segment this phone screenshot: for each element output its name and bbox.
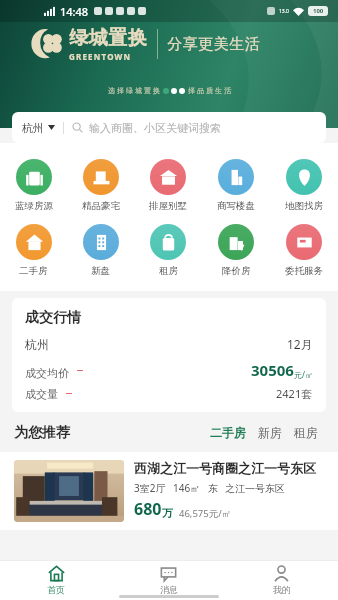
staticText: 46,575元/㎡ <box>179 507 232 520</box>
button[interactable]: 降价房 <box>202 221 270 280</box>
button[interactable]: 我的 <box>225 560 338 600</box>
button[interactable]: 二手房 <box>204 421 252 444</box>
button[interactable]: 杭州 <box>12 112 326 143</box>
staticText: 委托服务 <box>285 265 323 277</box>
staticText: 择品质生活 <box>187 86 232 95</box>
staticText: 万 <box>162 506 173 520</box>
staticText: 12月 <box>287 336 313 352</box>
button[interactable]: 商写楼盘 <box>202 156 270 215</box>
staticText: 成交行情 <box>25 309 81 327</box>
button[interactable]: 地图找房 <box>270 156 338 215</box>
staticText: 146㎡ <box>173 481 201 495</box>
button[interactable]: 蓝绿房源 <box>0 156 67 215</box>
button[interactable]: 消息 <box>112 560 225 600</box>
staticText: 降价房 <box>222 265 251 277</box>
button[interactable]: 新盘 <box>67 221 134 280</box>
staticText: 杭州 <box>25 337 49 352</box>
staticText: 租房 <box>159 265 178 277</box>
button[interactable]: 二手房 <box>0 221 67 280</box>
staticText: 二手房 <box>210 425 246 440</box>
staticText: 新盘 <box>91 265 110 277</box>
staticText: 30506 <box>251 360 294 380</box>
button[interactable]: 首页 <box>0 560 112 600</box>
staticText: 新房 <box>258 425 282 440</box>
staticText: 地图找房 <box>285 200 323 212</box>
staticText: 精品豪宅 <box>82 200 120 212</box>
staticText: 为您推荐 <box>14 424 70 442</box>
button[interactable]: 租房 <box>288 421 324 444</box>
staticText: 东 <box>208 482 218 495</box>
staticText: 绿城置换 <box>69 26 147 50</box>
staticText: 我的 <box>273 584 291 595</box>
staticText: 消息 <box>160 584 178 595</box>
staticText: 商写楼盘 <box>217 200 255 212</box>
staticText: 首页 <box>47 584 65 595</box>
button[interactable]: 委托服务 <box>270 221 338 280</box>
button[interactable]: 西湖之江一号商圈之江一号东区 <box>0 452 338 530</box>
button[interactable]: 成交行情 <box>12 298 326 412</box>
button[interactable]: 新房 <box>252 421 288 444</box>
staticText: 分享更美生活 <box>167 35 260 54</box>
staticText: 西湖之江一号商圈之江一号东区 <box>134 460 316 476</box>
staticText: 元/㎡ <box>294 369 313 380</box>
staticText: 蓝绿房源 <box>15 200 53 212</box>
staticText: 选择绿城置换 <box>107 86 161 95</box>
staticText: 输入商圈、小区关键词搜索 <box>89 121 221 135</box>
staticText: 杭州 <box>22 121 44 135</box>
staticText: 2421套 <box>276 386 313 401</box>
staticText: 3室2厅 <box>134 481 166 495</box>
staticText: 13.0 <box>279 8 289 15</box>
staticText: 100 <box>313 7 324 15</box>
staticText: 租房 <box>294 425 318 440</box>
button[interactable]: 租房 <box>134 221 202 280</box>
staticText: 二手房 <box>19 265 48 277</box>
button[interactable]: 排屋别墅 <box>134 156 202 215</box>
staticText: 14:48 <box>60 4 89 19</box>
staticText: 成交均价 <box>25 366 69 380</box>
staticText: 之江一号东区 <box>225 482 285 495</box>
button[interactable]: 精品豪宅 <box>67 156 134 215</box>
staticText: 680 <box>134 498 162 520</box>
staticText: 成交量 <box>25 387 58 401</box>
staticText: 排屋别墅 <box>149 200 187 212</box>
staticText: GREENTOWN <box>69 51 132 62</box>
